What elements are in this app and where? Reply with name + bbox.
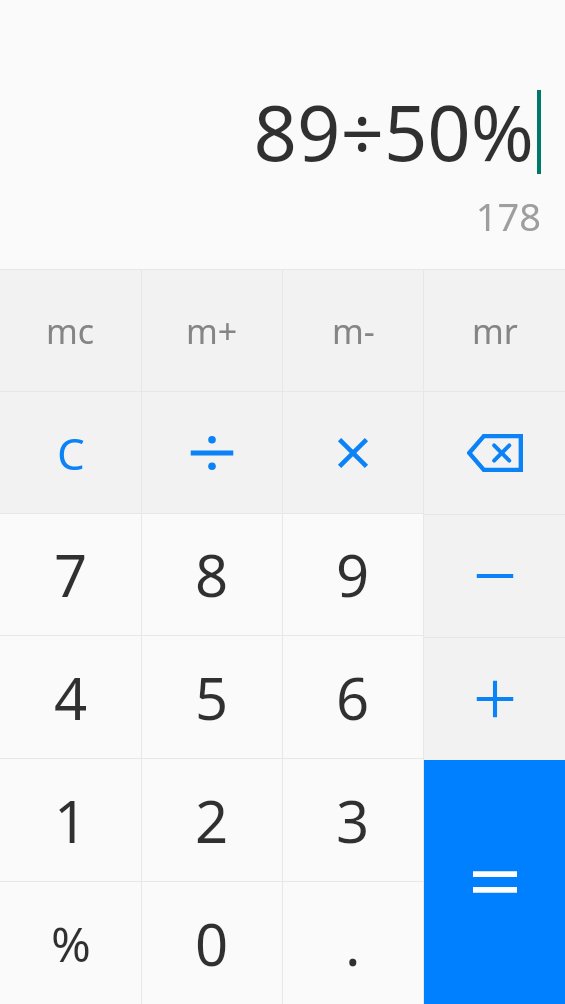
- button[interactable]: Divide: [142, 392, 282, 513]
- button[interactable]: Plus: [424, 638, 565, 760]
- button[interactable]: Backspace: [424, 392, 565, 514]
- button[interactable]: m-: [283, 270, 423, 391]
- button[interactable]: 8: [142, 514, 282, 635]
- button[interactable]: mr: [424, 270, 565, 391]
- staticText: 2: [195, 781, 229, 860]
- button[interactable]: 4: [0, 636, 141, 758]
- staticText: 89÷50%: [253, 80, 534, 184]
- button[interactable]: Minus: [424, 515, 565, 637]
- staticText: 9: [336, 535, 370, 614]
- button[interactable]: Multiply: [283, 392, 423, 513]
- button[interactable]: 5: [142, 636, 282, 758]
- button[interactable]: 7: [0, 514, 141, 635]
- staticText: mc: [46, 308, 95, 354]
- staticText: .: [345, 904, 361, 983]
- staticText: 3: [336, 781, 370, 860]
- button[interactable]: 2: [142, 759, 282, 881]
- staticText: 1: [54, 781, 88, 860]
- button[interactable]: .: [283, 882, 423, 1004]
- button[interactable]: mc: [0, 270, 141, 391]
- staticText: C: [57, 423, 85, 483]
- staticText: mr: [472, 308, 518, 354]
- button[interactable]: 3: [283, 759, 423, 881]
- staticText: 7: [54, 535, 88, 614]
- staticText: 4: [54, 658, 88, 737]
- button[interactable]: 1: [0, 759, 141, 881]
- button[interactable]: %: [0, 882, 141, 1004]
- staticText: 5: [195, 658, 229, 737]
- button[interactable]: C: [0, 392, 141, 513]
- button[interactable]: 0: [142, 882, 282, 1004]
- staticText: %: [51, 911, 91, 976]
- staticText: m-: [332, 308, 375, 354]
- staticText: 8: [195, 535, 229, 614]
- staticText: 178: [475, 190, 541, 242]
- button[interactable]: m+: [142, 270, 282, 391]
- staticText: 6: [336, 658, 370, 737]
- staticText: m+: [186, 308, 238, 354]
- button[interactable]: 6: [283, 636, 423, 758]
- button[interactable]: Equals: [424, 760, 565, 1004]
- button[interactable]: 9: [283, 514, 423, 635]
- staticText: 0: [195, 904, 229, 983]
